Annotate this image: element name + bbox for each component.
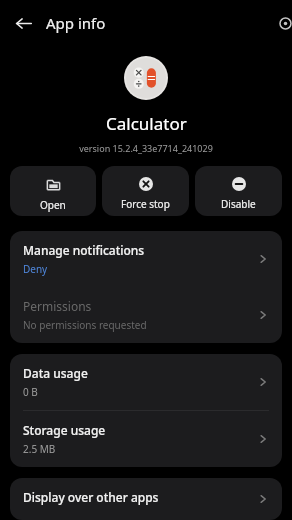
button[interactable]: Storage usage bbox=[10, 411, 282, 467]
button[interactable]: Manage notifications bbox=[10, 231, 282, 287]
staticText: Manage notifications bbox=[23, 242, 145, 258]
button[interactable]: Permissions bbox=[10, 287, 282, 343]
staticText: Permissions bbox=[23, 298, 92, 314]
staticText: Open bbox=[40, 198, 66, 212]
button[interactable]: Back bbox=[6, 6, 40, 40]
button[interactable]: Data usage bbox=[10, 354, 282, 410]
staticText: App info bbox=[46, 13, 106, 33]
staticText: Deny bbox=[23, 262, 48, 276]
staticText: No permissions requested bbox=[23, 318, 147, 332]
button[interactable]: Display over other apps bbox=[10, 478, 282, 520]
button[interactable]: Disable bbox=[195, 166, 282, 216]
staticText: Force stop bbox=[121, 197, 170, 211]
staticText: Display over other apps bbox=[23, 489, 159, 505]
button[interactable]: More options bbox=[279, 12, 292, 34]
staticText: Disable bbox=[221, 197, 256, 211]
staticText: 0 B bbox=[23, 385, 38, 399]
button[interactable]: Force stop bbox=[102, 166, 189, 216]
staticText: 2.5 MB bbox=[23, 442, 56, 456]
staticText: Data usage bbox=[23, 365, 88, 381]
staticText: Storage usage bbox=[23, 422, 106, 438]
staticText: version 15.2.4_33e7714_241029 bbox=[79, 142, 213, 154]
staticText: Calculator bbox=[106, 112, 187, 135]
button[interactable]: Open bbox=[10, 166, 96, 216]
